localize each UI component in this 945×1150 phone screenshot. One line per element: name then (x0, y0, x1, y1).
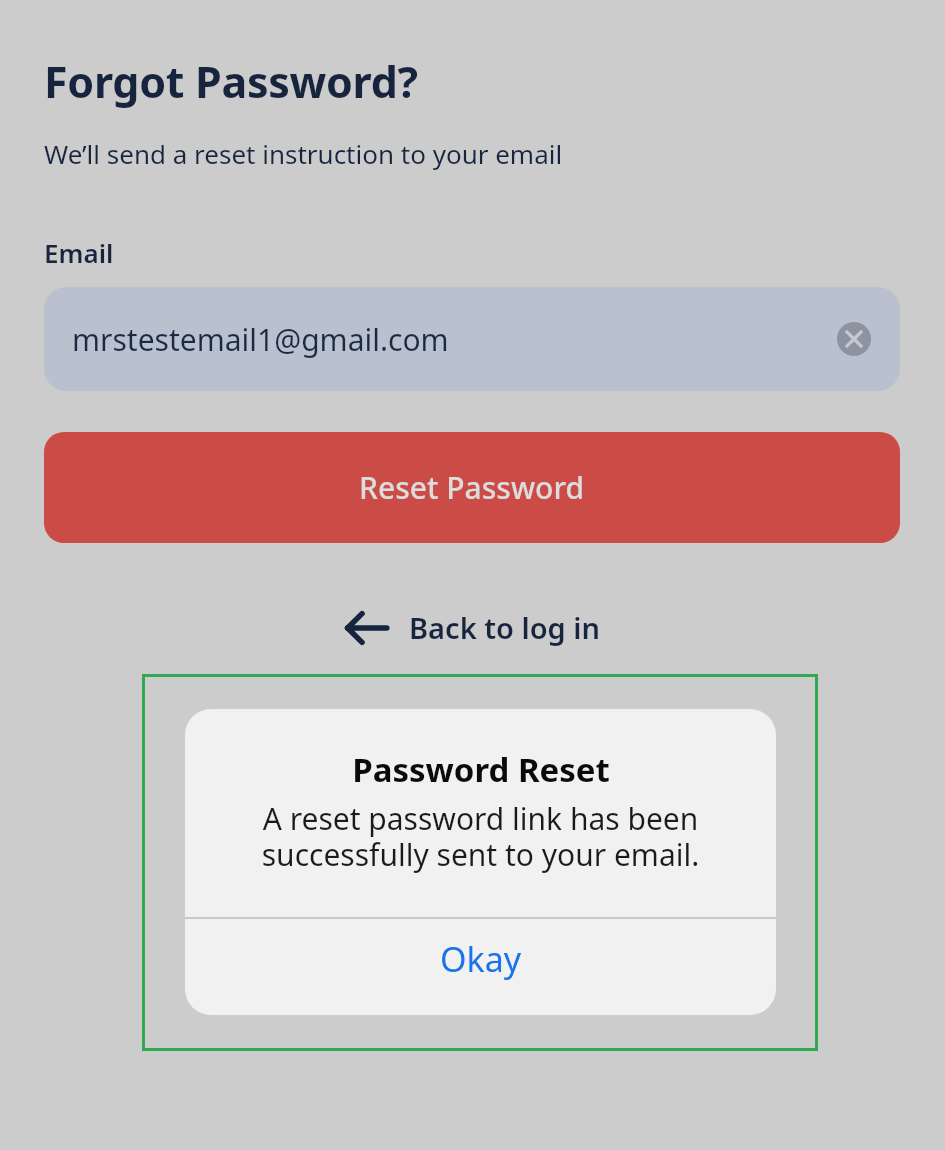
staticText: A reset password link has been successfu… (209, 798, 752, 875)
button[interactable]: Back to log in (337, 602, 608, 653)
staticText: Reset Password (359, 467, 585, 508)
button[interactable]: mrstestemail1@gmail.com (44, 287, 900, 391)
staticText: mrstestemail1@gmail.com (72, 319, 832, 360)
staticText: Password Reset (352, 747, 610, 792)
staticText: Okay (440, 936, 522, 982)
button[interactable]: Reset Password (44, 432, 900, 543)
button[interactable]: Okay (185, 919, 776, 1015)
staticText: Email (44, 235, 114, 270)
staticText: We’ll send a reset instruction to your e… (44, 136, 563, 171)
button[interactable]: Clear email (832, 317, 876, 361)
staticText: Back to log in (409, 608, 600, 647)
staticText: Forgot Password? (44, 52, 418, 111)
